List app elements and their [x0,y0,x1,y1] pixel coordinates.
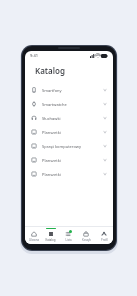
staticText: Sprzęt komputerowy [42,144,81,149]
button[interactable]: Glowna [25,227,42,242]
staticText: Lista [65,238,72,242]
button[interactable]: Koszyk [77,227,95,242]
staticText: Glowna [29,238,39,242]
staticText: Koszyk [82,238,91,242]
staticText: Planszetki [42,130,61,135]
button[interactable]: Profil [95,227,113,242]
button[interactable]: Sprzęt komputerowy [25,139,113,153]
staticText: Profil [101,238,108,242]
button[interactable]: Planszetki [25,125,113,139]
staticText: Smartwatche [42,102,67,107]
button[interactable]: Planszetki [25,167,113,181]
button[interactable]: Słuchawki [25,111,113,125]
button[interactable]: Katalog [42,227,59,242]
button[interactable]: Lista [59,227,77,242]
button[interactable]: Smartwatche [25,97,113,111]
staticText: Smartfony [42,88,62,93]
staticText: Katalog [35,65,65,76]
button[interactable]: Smartfony [25,83,113,97]
staticText: Katalog [45,238,56,242]
staticText: Planszetki [42,172,61,177]
button[interactable]: Planszetki [25,153,113,167]
staticText: 9:41 [30,53,38,58]
staticText: Planszetki [42,158,61,163]
staticText: Słuchawki [42,116,61,121]
